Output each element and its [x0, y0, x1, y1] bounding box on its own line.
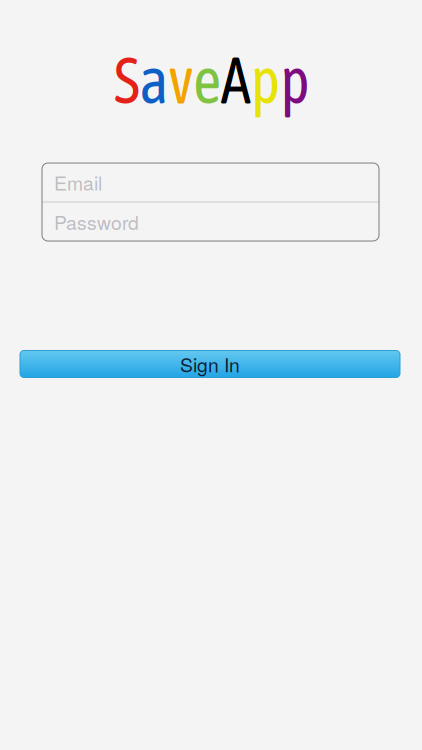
- button[interactable]: Email: [42, 163, 379, 201]
- button[interactable]: Password: [42, 202, 379, 241]
- staticText: SaveApp: [105, 41, 318, 118]
- staticText: Email: [54, 168, 102, 196]
- button[interactable]: Sign In: [20, 350, 400, 377]
- staticText: Sign In: [180, 350, 240, 378]
- staticText: Password: [54, 208, 139, 236]
